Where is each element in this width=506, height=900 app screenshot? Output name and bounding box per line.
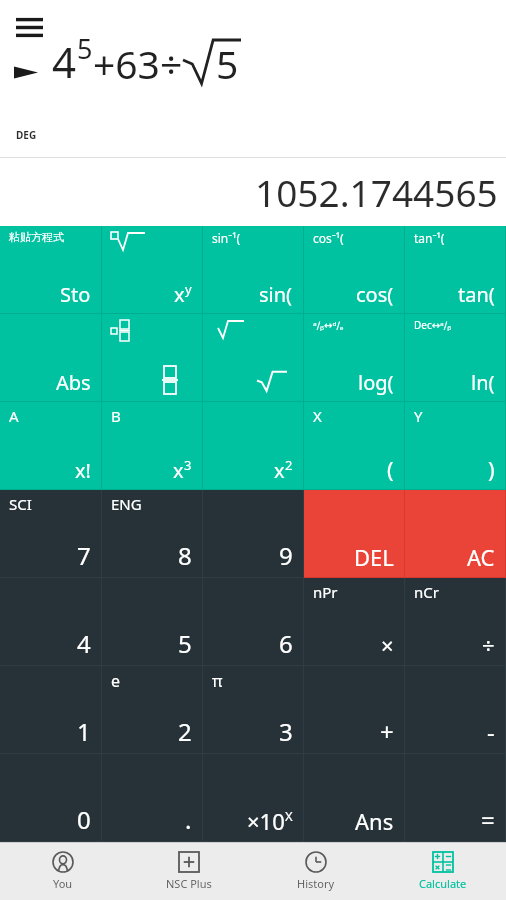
staticText: X: [313, 406, 322, 426]
button[interactable]: Open parenthesis: [304, 402, 405, 490]
staticText: DEL: [354, 542, 394, 572]
staticText: =: [481, 803, 495, 836]
staticText: 2: [285, 456, 293, 474]
button[interactable]: x cubed: [102, 402, 203, 490]
button[interactable]: tangent: [405, 226, 506, 314]
button[interactable]: Factorial: [0, 402, 102, 490]
button[interactable]: Minus: [405, 666, 506, 754]
button[interactable]: Square root: [203, 314, 304, 402]
staticText: y: [185, 280, 192, 298]
button[interactable]: Equals: [405, 754, 506, 842]
staticText: 4: [77, 627, 91, 660]
button[interactable]: x squared: [203, 402, 304, 490]
button[interactable]: Nine: [203, 490, 304, 578]
button[interactable]: Answer: [304, 754, 405, 842]
button[interactable]: You: [0, 842, 126, 900]
button[interactable]: NSC Plus: [126, 842, 252, 900]
button[interactable]: Zero: [0, 754, 102, 842]
button[interactable]: Decimal point: [102, 754, 203, 842]
button[interactable]: Eight: [102, 490, 203, 578]
staticText: 2: [178, 715, 192, 748]
button[interactable]: Plus: [304, 666, 405, 754]
staticText: +63÷: [93, 37, 183, 90]
staticText: X: [285, 807, 293, 825]
staticText: History: [297, 876, 335, 891]
button[interactable]: Two: [102, 666, 203, 754]
button[interactable]: cosine: [304, 226, 405, 314]
button[interactable]: Store: [0, 226, 102, 314]
button[interactable]: Divide: [405, 578, 506, 666]
staticText: 5: [178, 627, 192, 660]
staticText: ᵃ∕ᵦ↔ᵈ∕ₑ: [313, 318, 344, 332]
staticText: 粘贴方程式: [9, 230, 64, 244]
staticText: ×: [381, 630, 394, 660]
staticText: You: [53, 876, 73, 891]
button[interactable]: Four: [0, 578, 102, 666]
staticText: -: [487, 715, 495, 748]
button[interactable]: Delete: [304, 490, 405, 578]
staticText: ): [488, 454, 495, 484]
button[interactable]: One: [0, 666, 102, 754]
staticText: A: [9, 406, 19, 426]
staticText: cos(: [356, 281, 394, 308]
staticText: ENG: [111, 494, 142, 514]
staticText: B: [111, 406, 121, 426]
button[interactable]: Menu: [8, 6, 50, 48]
staticText: x!: [75, 457, 91, 484]
button[interactable]: History: [252, 842, 379, 900]
button[interactable]: Absolute value: [0, 314, 102, 402]
button[interactable]: sine: [203, 226, 304, 314]
staticText: .: [185, 803, 192, 836]
staticText: Sto: [60, 281, 91, 308]
staticText: cos⁻¹(: [313, 230, 344, 246]
staticText: AC: [467, 542, 495, 572]
staticText: Y: [414, 406, 423, 426]
staticText: sin(: [259, 281, 293, 308]
staticText: 1052.1744565: [255, 167, 498, 217]
button[interactable]: x to the power y: [102, 226, 203, 314]
button[interactable]: Close parenthesis: [405, 402, 506, 490]
staticText: Calculate: [419, 876, 467, 891]
staticText: sin⁻¹(: [212, 230, 241, 246]
staticText: tan(: [458, 281, 495, 308]
staticText: (: [387, 454, 394, 484]
staticText: π: [212, 670, 223, 692]
staticText: 0: [77, 803, 91, 836]
button[interactable]: Fraction: [102, 314, 203, 402]
button[interactable]: All clear: [405, 490, 506, 578]
staticText: 5: [77, 30, 93, 67]
staticText: ×10: [247, 806, 285, 836]
staticText: 7: [77, 539, 91, 572]
button[interactable]: Five: [102, 578, 203, 666]
staticText: NSC Plus: [166, 876, 212, 891]
staticText: nCr: [414, 582, 439, 602]
staticText: Abs: [56, 369, 91, 396]
button[interactable]: Times ten to the power: [203, 754, 304, 842]
staticText: +: [380, 715, 394, 748]
staticText: Dec↔ᵃ∕ᵦ: [414, 318, 452, 332]
staticText: DEG: [16, 128, 37, 142]
staticText: ln(: [471, 369, 495, 396]
staticText: log(: [358, 369, 394, 396]
staticText: 1: [77, 715, 91, 748]
staticText: e: [111, 670, 121, 692]
button[interactable]: Natural log: [405, 314, 506, 402]
button[interactable]: Three: [203, 666, 304, 754]
button[interactable]: Logarithm: [304, 314, 405, 402]
staticText: SCI: [9, 494, 32, 514]
staticText: 5: [216, 37, 239, 90]
staticText: nPr: [313, 582, 338, 602]
staticText: tan⁻¹(: [414, 230, 445, 246]
button[interactable]: Calculate: [379, 842, 506, 900]
staticText: 4: [52, 33, 77, 90]
button[interactable]: Six: [203, 578, 304, 666]
staticText: ÷: [482, 630, 495, 660]
button[interactable]: Multiply: [304, 578, 405, 666]
staticText: x: [174, 281, 185, 308]
staticText: 8: [178, 539, 192, 572]
staticText: x: [173, 457, 184, 484]
staticText: x: [274, 457, 285, 484]
button[interactable]: Seven: [0, 490, 102, 578]
staticText: 9: [279, 539, 293, 572]
staticText: 3: [184, 456, 192, 474]
